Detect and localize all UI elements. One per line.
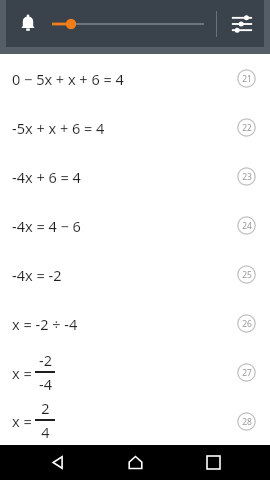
staticText: 21 (242, 73, 252, 85)
button[interactable]: x = (0, 348, 270, 397)
button[interactable]: -4x = 4 − 6 (0, 201, 270, 250)
button[interactable]: Back (38, 445, 78, 480)
staticText: 4 (41, 422, 50, 442)
button[interactable]: Settings (222, 4, 262, 44)
staticText: -5x + x + 6 = 4 (12, 118, 105, 138)
staticText: -2 (39, 350, 52, 370)
staticText: 23 (242, 171, 252, 183)
button[interactable]: -4x + 6 = 4 (0, 152, 270, 201)
button[interactable]: Recent apps (193, 445, 233, 480)
staticText: x = (12, 411, 32, 431)
button[interactable]: Speed slider (50, 6, 210, 42)
staticText: x = -2 ÷ -4 (12, 314, 78, 334)
button[interactable]: Notifications (10, 6, 46, 42)
staticText: x = (12, 363, 32, 383)
staticText: -4 (39, 374, 52, 394)
staticText: -4x = 4 − 6 (12, 216, 81, 236)
staticText: 24 (242, 220, 252, 232)
staticText: -4x = -2 (12, 265, 62, 285)
button[interactable]: -4x = -2 (0, 250, 270, 299)
button[interactable]: x = -2 ÷ -4 (0, 299, 270, 348)
staticText: 26 (242, 318, 252, 330)
staticText: 2 (41, 398, 50, 418)
staticText: 0 − 5x + x + 6 = 4 (12, 69, 124, 89)
staticText: -4x + 6 = 4 (12, 167, 81, 187)
button[interactable]: x = (0, 397, 270, 445)
button[interactable]: 0 − 5x + x + 6 = 4 (0, 54, 270, 103)
staticText: 27 (242, 367, 252, 379)
staticText: 25 (242, 269, 252, 281)
button[interactable]: -5x + x + 6 = 4 (0, 103, 270, 152)
staticText: 28 (242, 416, 252, 428)
staticText: 22 (242, 122, 252, 134)
button[interactable]: Home (115, 445, 155, 480)
